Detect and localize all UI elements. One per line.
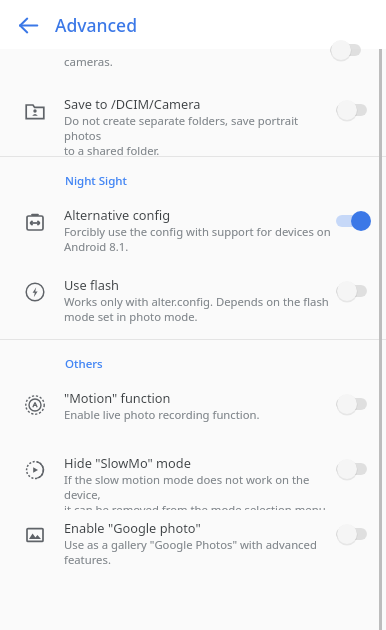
button[interactable]: Hide "SlowMo" mode [0, 445, 386, 510]
staticText: Night Sight [65, 173, 127, 189]
staticText: Advanced [55, 13, 138, 37]
staticText: Enable "Google photo" [64, 519, 201, 536]
staticText: Hide "SlowMo" mode [64, 454, 191, 471]
staticText: Do not create separate folders, save por… [64, 113, 336, 156]
button[interactable]: Off [336, 524, 372, 544]
button[interactable]: Off [336, 394, 372, 414]
button[interactable]: On [336, 211, 372, 231]
button[interactable]: Use flash [0, 267, 386, 335]
staticText: Alternative config [64, 206, 171, 223]
staticText: Forcibly use the config with support for… [64, 224, 331, 254]
staticText: Save to /DCIM/Camera [64, 95, 201, 112]
button[interactable]: Off [330, 40, 366, 60]
staticText: Enable live photo recording function. [64, 407, 260, 422]
button[interactable]: "Motion" function [0, 380, 386, 445]
staticText: Use flash [64, 276, 119, 293]
button[interactable]: Off [336, 459, 372, 479]
staticText: cameras. [64, 54, 113, 70]
staticText: If the slow motion mode does not work on… [64, 472, 336, 510]
button[interactable]: Enable "Google photo" [0, 510, 386, 578]
button[interactable]: Off [336, 281, 372, 301]
button[interactable]: Save to /DCIM/Camera [0, 86, 386, 156]
staticText: "Motion" function [64, 389, 171, 406]
button[interactable]: Off [336, 100, 372, 120]
staticText: Use as a gallery "Google Photos" with ad… [64, 537, 317, 567]
staticText: Works only with alter.config. Depends on… [64, 294, 329, 324]
staticText: Others [65, 356, 103, 372]
button[interactable]: Back [10, 7, 46, 43]
button[interactable]: Alternative config [0, 197, 386, 267]
